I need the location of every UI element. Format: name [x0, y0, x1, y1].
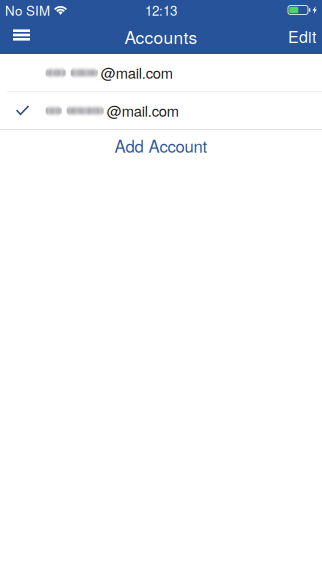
- button[interactable]: @mail.com: [0, 54, 322, 91]
- staticText: 12:13: [145, 0, 177, 20]
- staticText: No SIM: [5, 0, 50, 20]
- staticText: @mail.com: [101, 62, 173, 83]
- button[interactable]: Menu: [0, 21, 43, 53]
- staticText: Edit: [288, 24, 316, 47]
- button[interactable]: Add Account: [0, 130, 322, 165]
- button[interactable]: Edit: [280, 16, 322, 57]
- staticText: Add Account: [114, 134, 207, 157]
- button[interactable]: @mail.com: [0, 92, 322, 129]
- staticText: Accounts: [124, 24, 197, 49]
- staticText: @mail.com: [107, 100, 179, 121]
